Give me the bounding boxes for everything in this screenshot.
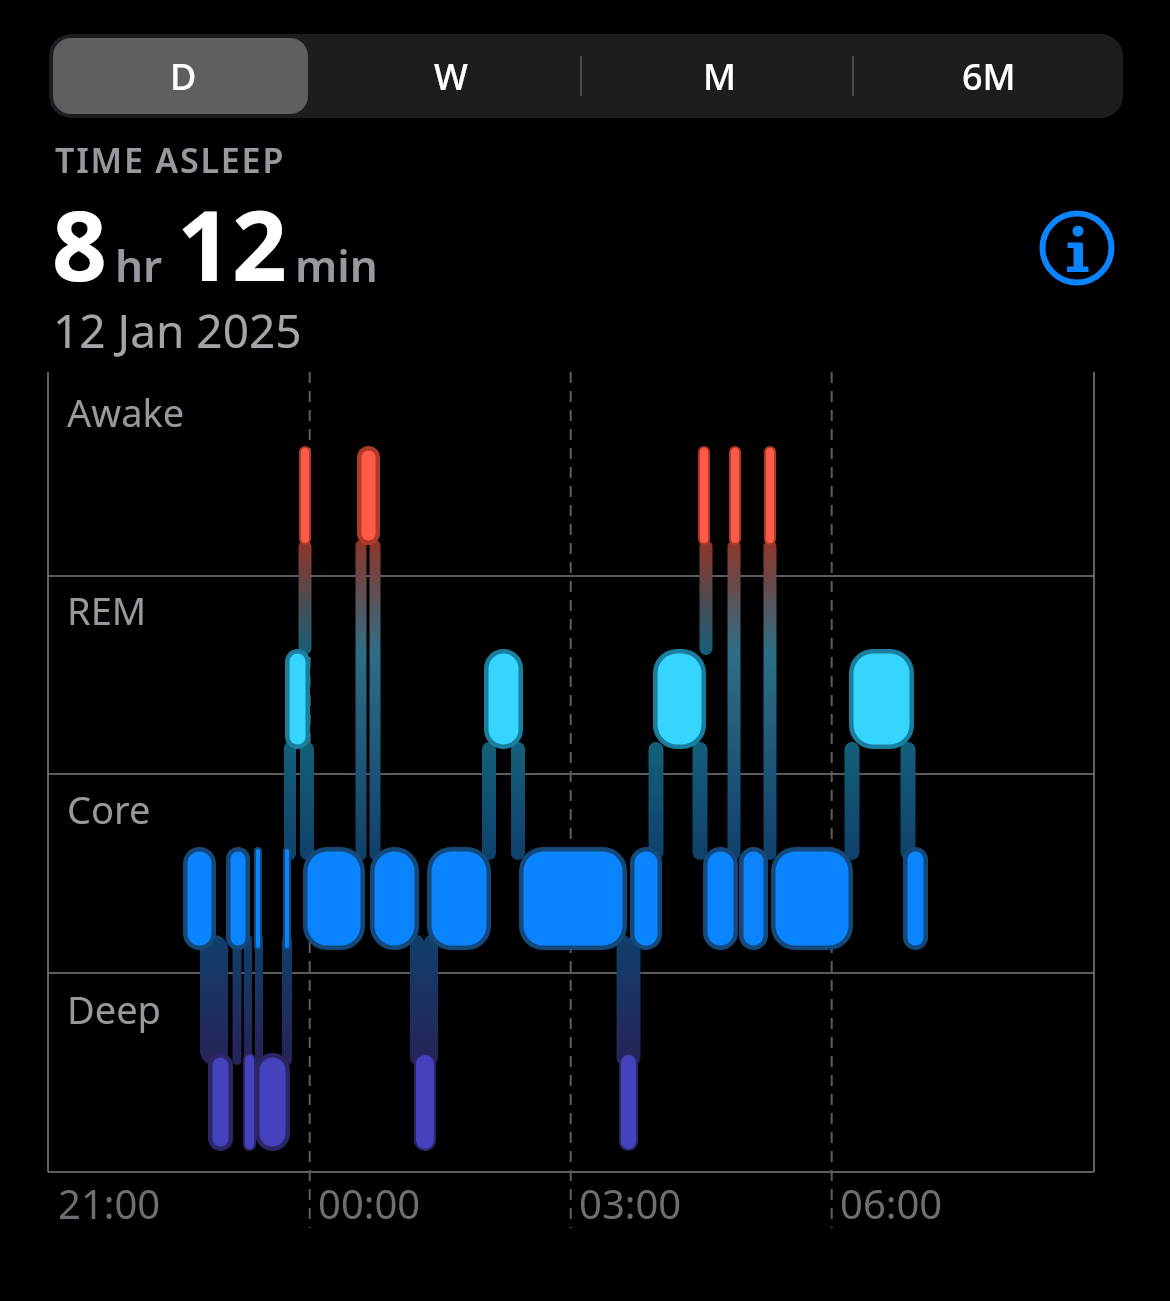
button[interactable]: D — [49, 34, 317, 118]
staticText: REM — [67, 584, 147, 636]
staticText: 8 — [52, 178, 107, 309]
staticText: 12 — [177, 178, 287, 309]
button[interactable]: M — [585, 34, 854, 118]
button[interactable]: 6M — [854, 34, 1123, 118]
staticText: hr — [115, 235, 163, 295]
staticText: M — [703, 52, 737, 101]
staticText: Core — [67, 783, 151, 835]
staticText: W — [434, 52, 468, 101]
staticText: 21:00 — [58, 1176, 161, 1230]
staticText: 00:00 — [318, 1176, 421, 1230]
staticText: 06:00 — [840, 1176, 943, 1230]
staticText: D — [170, 52, 197, 101]
button[interactable] — [1038, 209, 1116, 287]
staticText: 03:00 — [579, 1176, 682, 1230]
staticText: Deep — [67, 983, 161, 1035]
staticText: TIME ASLEEP — [55, 137, 286, 183]
staticText: min — [295, 235, 378, 295]
staticText: 12 Jan 2025 — [53, 299, 302, 362]
staticText: Awake — [67, 386, 185, 438]
staticText: 6M — [962, 52, 1016, 101]
button[interactable]: W — [317, 34, 585, 118]
